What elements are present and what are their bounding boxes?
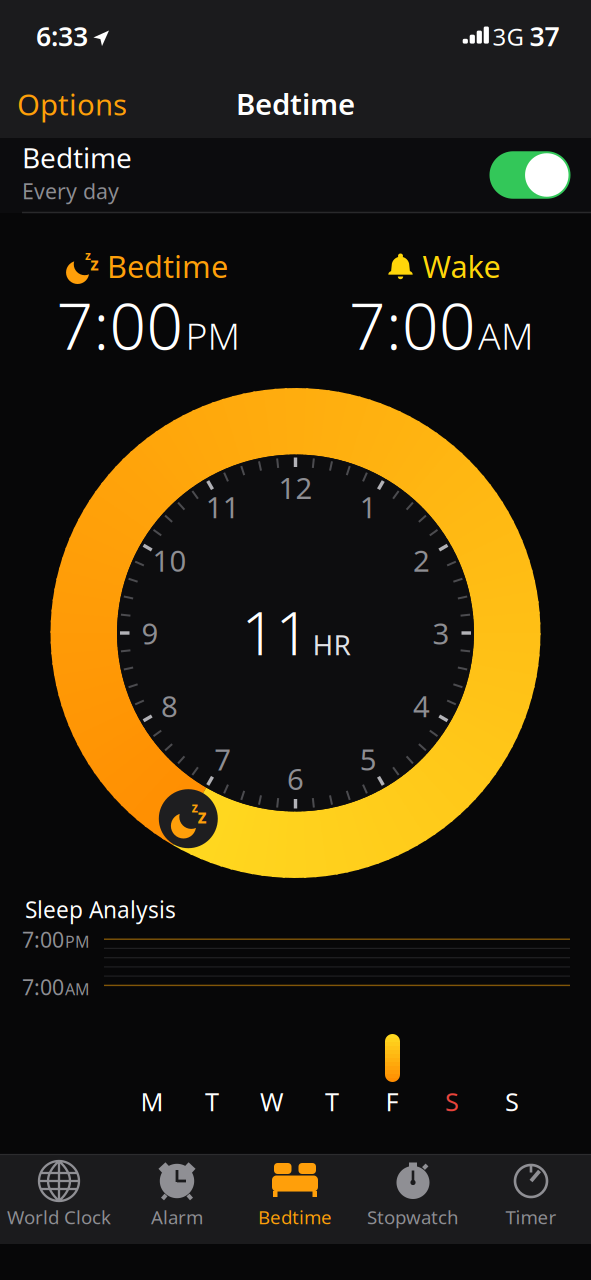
staticText: Bedtime [107,246,228,286]
staticText: z [90,252,99,275]
staticText: 9 [141,613,158,652]
staticText: 3G [492,21,523,52]
staticText: 6 [287,759,304,798]
staticText: PM [65,931,90,952]
staticText: Alarm [151,1205,203,1229]
staticText: PM [185,311,240,360]
staticText: 7 [214,739,231,778]
staticText: 7:00 [22,925,64,954]
staticText: 8 [161,686,178,725]
staticText: Bedtime [22,139,132,176]
staticText: Bedtime [236,84,355,123]
staticText: Options [17,84,127,123]
staticText: 2 [413,541,430,580]
staticText: 6:33 [36,18,88,54]
staticText: Sleep Analysis [25,894,176,924]
staticText: Every day [22,177,119,205]
staticText: 1 [360,487,377,526]
staticText: S [505,1085,519,1118]
staticText: 4 [413,686,430,725]
staticText: AM [65,978,90,1000]
staticText: 7:00 [56,282,183,367]
button[interactable]: Bedtime enabled [489,151,570,199]
button[interactable]: Bedtime [236,1154,354,1242]
staticText: z [198,804,207,829]
button[interactable]: Alarm [118,1154,236,1242]
staticText: 11 [206,487,240,526]
button[interactable]: World Clock [0,1154,118,1242]
staticText: World Clock [7,1205,111,1229]
staticText: 12 [278,468,312,507]
staticText: 7:00 [22,973,64,1001]
staticText: z [191,798,198,816]
staticText: 10 [152,541,186,580]
staticText: M [140,1085,163,1118]
button[interactable]: Options [17,84,127,123]
staticText: AM [478,311,534,360]
staticText: Wake [422,246,500,286]
staticText: 7:00 [349,282,476,367]
button[interactable]: Bedtime time [159,789,218,848]
button[interactable]: Stopwatch [354,1154,472,1242]
staticText: T [205,1085,219,1118]
staticText: 37 [529,18,559,54]
staticText: W [260,1085,284,1118]
staticText: T [325,1085,339,1118]
staticText: 5 [360,739,377,778]
staticText: Timer [505,1205,556,1229]
staticText: F [385,1085,398,1118]
staticText: z [85,247,91,263]
staticText: Stopwatch [367,1205,459,1229]
staticText: S [445,1085,459,1118]
staticText: Bedtime [258,1205,332,1229]
staticText: 11 [241,592,309,672]
staticText: 3 [432,613,449,652]
button[interactable]: Timer [472,1154,590,1242]
staticText: HR [312,626,350,663]
